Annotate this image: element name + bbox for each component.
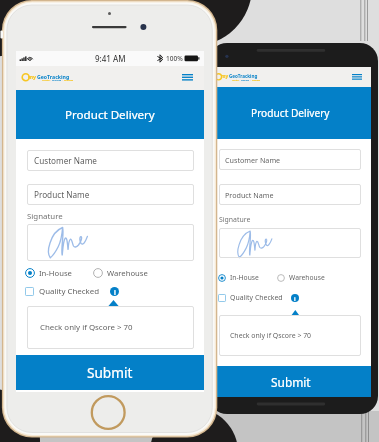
staticText: Quality Checked — [230, 293, 283, 302]
staticText: Customer Name — [34, 155, 97, 166]
staticText: Warehouse — [289, 273, 325, 282]
staticText: 9:41 AM — [95, 53, 126, 64]
staticText: Locate — [42, 79, 50, 82]
staticText: 100% — [166, 54, 183, 63]
staticText: my — [28, 73, 37, 80]
staticText: Product Delivery — [251, 106, 330, 120]
button[interactable]: Submit — [16, 355, 204, 390]
button[interactable] — [219, 228, 361, 258]
staticText: Check only if Qscore > 70 — [230, 331, 312, 340]
staticText: GeoTracking — [37, 73, 70, 80]
staticText: i — [114, 288, 116, 296]
staticText: i — [294, 295, 296, 302]
staticText: Product Delivery — [65, 107, 155, 123]
button[interactable]: Menu — [182, 74, 193, 80]
staticText: In-House — [230, 273, 259, 282]
staticText: In-House — [39, 268, 72, 278]
button[interactable]: Customer Name — [219, 149, 361, 170]
staticText: Product Name — [225, 190, 274, 200]
button[interactable]: Warehouse — [93, 268, 148, 278]
staticText: Product Name — [34, 189, 90, 200]
button[interactable]: Quality Checked — [25, 286, 100, 297]
button[interactable]: Info — [110, 287, 119, 296]
staticText: my — [221, 73, 229, 79]
staticText: · — [50, 79, 52, 82]
staticText: Signature — [219, 215, 251, 224]
staticText: Submit — [87, 363, 133, 382]
staticText: Customer Name — [225, 155, 281, 165]
button[interactable]: Submit — [210, 366, 371, 397]
staticText: Submit — [271, 374, 311, 390]
button[interactable] — [27, 224, 194, 261]
button[interactable]: Product Name — [27, 184, 194, 205]
staticText: Manage — [252, 79, 261, 82]
button[interactable]: Quality Checked — [218, 293, 283, 302]
button[interactable]: Customer Name — [27, 150, 194, 171]
button[interactable]: Info — [291, 294, 299, 302]
staticText: · — [62, 79, 64, 82]
button[interactable]: In-House — [25, 268, 72, 278]
button[interactable]: Warehouse — [277, 273, 325, 282]
staticText: Manage — [52, 79, 62, 82]
staticText: GeoTracking — [229, 73, 258, 79]
staticText: · — [239, 79, 241, 82]
staticText: Warehouse — [107, 268, 148, 278]
staticText: Quality Checked — [39, 286, 100, 297]
staticText: · — [250, 79, 252, 82]
staticText: Locate — [232, 79, 239, 82]
button[interactable]: In-House — [218, 273, 259, 282]
button[interactable]: Menu — [352, 74, 362, 80]
staticText: Manage — [64, 79, 74, 82]
staticText: Manage — [241, 79, 250, 82]
staticText: Signature — [27, 211, 63, 222]
button[interactable]: Product Name — [219, 184, 361, 205]
staticText: Check only if Qscore > 70 — [40, 322, 133, 333]
